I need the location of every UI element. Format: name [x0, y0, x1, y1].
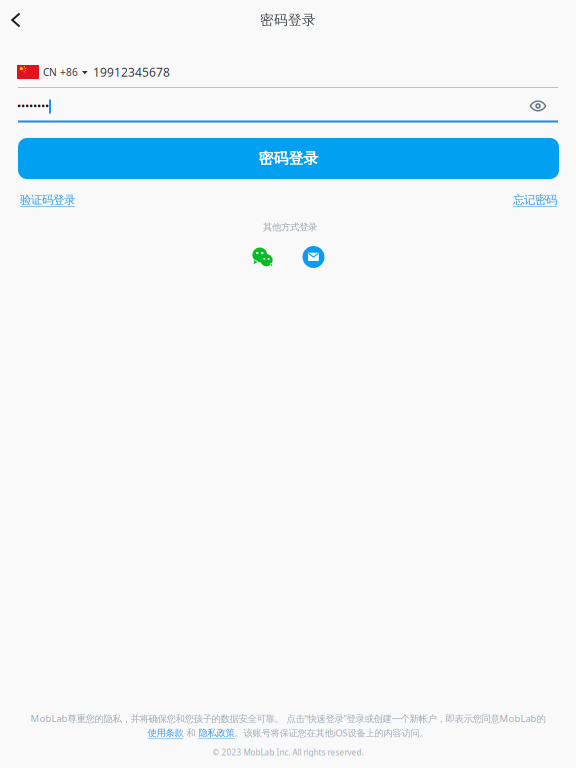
staticText: 19912345678	[93, 64, 170, 80]
staticText: 验证码登录	[20, 193, 75, 207]
staticText: 使用条款	[147, 727, 183, 739]
button[interactable]: Sign in with Email	[302, 246, 324, 268]
staticText: 。该账号将保证您在其他iOS设备上的内容访问。	[234, 727, 428, 739]
staticText: 密码登录	[260, 12, 316, 28]
button[interactable]: 密码登录	[18, 138, 559, 179]
button[interactable]: 隐私政策	[198, 727, 234, 739]
button[interactable]: Show password	[525, 96, 551, 116]
button[interactable]: CN +86	[17, 63, 557, 81]
button[interactable]: 验证码登录	[20, 193, 75, 207]
button[interactable]: 使用条款	[147, 727, 183, 739]
staticText: 忘记密码	[513, 193, 557, 207]
staticText: MobLab尊重您的隐私，并将确保您和您孩子的数据安全可靠。 点击“快速登录”登…	[30, 712, 545, 725]
staticText: CN +86	[43, 65, 78, 79]
button[interactable]: Sign in with WeChat	[251, 247, 274, 266]
button[interactable]: Back	[0, 3, 32, 37]
staticText: ••••••••	[17, 99, 49, 113]
staticText: 隐私政策	[198, 727, 234, 739]
staticText: 和	[183, 727, 198, 739]
staticText: 密码登录	[258, 149, 318, 168]
staticText: 其他方式登录	[263, 221, 317, 233]
staticText: © 2023 MobLab Inc. All rights reserved.	[212, 747, 363, 758]
button[interactable]: 忘记密码	[513, 193, 557, 207]
